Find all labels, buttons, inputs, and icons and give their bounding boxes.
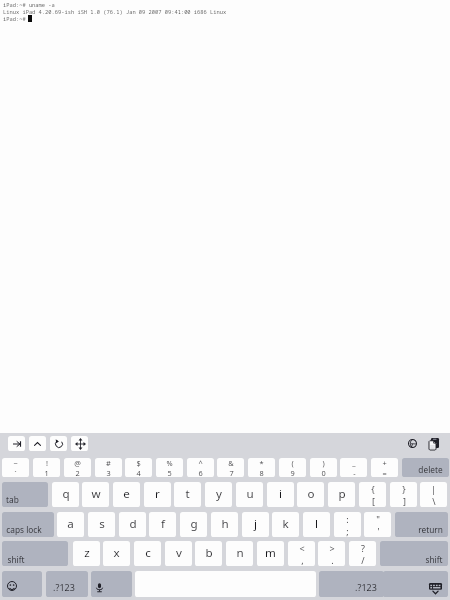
button[interactable]: w	[82, 482, 109, 507]
button[interactable]: +	[371, 458, 398, 477]
staticText: 1	[44, 468, 49, 477]
staticText: $	[136, 458, 141, 468]
staticText: return	[418, 524, 443, 535]
button[interactable]: $	[125, 458, 152, 477]
button[interactable]: u	[236, 482, 263, 507]
button[interactable]: <	[288, 541, 315, 566]
staticText: }	[402, 483, 406, 495]
button[interactable]: >	[318, 541, 345, 566]
button[interactable]: .?123	[319, 571, 384, 597]
button[interactable]: Arrow keys	[71, 436, 88, 451]
button[interactable]: p	[328, 482, 355, 507]
button[interactable]: e	[113, 482, 140, 507]
button[interactable]: i	[267, 482, 294, 507]
staticText: i	[279, 486, 282, 502]
button[interactable]: g	[180, 512, 207, 537]
button[interactable]: t	[174, 482, 201, 507]
button[interactable]: ~	[2, 458, 29, 477]
button[interactable]: (	[279, 458, 306, 477]
button[interactable]: f	[149, 512, 176, 537]
button[interactable]: )	[310, 458, 337, 477]
button[interactable]: }	[390, 482, 417, 507]
staticText: ]	[403, 495, 406, 507]
button[interactable]: a	[57, 512, 84, 537]
staticText: r	[155, 486, 160, 502]
button[interactable]: s	[88, 512, 115, 537]
staticText: f	[161, 516, 165, 532]
staticText: {	[371, 483, 375, 495]
button[interactable]: o	[297, 482, 324, 507]
button[interactable]: Control key	[29, 436, 46, 451]
button[interactable]: |	[420, 482, 447, 507]
button[interactable]: z	[73, 541, 100, 566]
staticText: shift	[7, 554, 25, 565]
button[interactable]: ?	[349, 541, 376, 566]
staticText: *	[259, 458, 264, 468]
staticText: delete	[418, 464, 443, 475]
button[interactable]: m	[257, 541, 284, 566]
staticText: 3	[106, 468, 111, 477]
button[interactable]: x	[103, 541, 130, 566]
button[interactable]: shift	[2, 541, 68, 566]
staticText: @	[74, 458, 81, 468]
staticText: n	[236, 545, 244, 561]
staticText: j	[254, 516, 257, 532]
staticText: tab	[6, 494, 19, 505]
button[interactable]: Change keyboard	[403, 436, 421, 451]
button[interactable]: Dictation	[91, 571, 132, 597]
button[interactable]: _	[340, 458, 367, 477]
staticText: d	[129, 516, 137, 532]
button[interactable]: delete	[402, 458, 449, 477]
button[interactable]: ^	[187, 458, 214, 477]
staticText: 6	[198, 468, 203, 477]
button[interactable]: *	[248, 458, 275, 477]
staticText: .?123	[355, 581, 377, 593]
staticText: m	[265, 545, 276, 561]
button[interactable]: b	[195, 541, 222, 566]
button[interactable]: !	[33, 458, 60, 477]
staticText: l	[315, 516, 318, 532]
staticText: 5	[167, 468, 172, 477]
staticText: .	[331, 554, 334, 566]
staticText: p	[338, 486, 346, 502]
button[interactable]: &	[217, 458, 244, 477]
staticText: e	[123, 486, 130, 502]
button[interactable]: c	[134, 541, 161, 566]
button[interactable]: Emoji	[2, 571, 42, 597]
staticText: iPad:~#	[3, 15, 29, 22]
button[interactable]: k	[272, 512, 299, 537]
button[interactable]: #	[95, 458, 122, 477]
button[interactable]: return	[395, 512, 448, 537]
button[interactable]: h	[211, 512, 238, 537]
button[interactable]: "	[364, 512, 391, 537]
staticText: s	[99, 516, 105, 532]
button[interactable]: Tab key	[8, 436, 25, 451]
staticText: g	[190, 516, 198, 532]
button[interactable]: caps lock	[2, 512, 54, 537]
button[interactable]: %	[156, 458, 183, 477]
staticText: 8	[259, 468, 264, 477]
button[interactable]: j	[242, 512, 269, 537]
staticText: !	[46, 458, 48, 468]
button[interactable]: v	[165, 541, 192, 566]
button[interactable]: l	[303, 512, 330, 537]
button[interactable]: r	[144, 482, 171, 507]
button[interactable]: {	[359, 482, 386, 507]
button[interactable]: shift	[380, 541, 448, 566]
button[interactable]: .?123	[46, 571, 88, 597]
button[interactable]: Command history	[50, 436, 67, 451]
button[interactable]: q	[52, 482, 79, 507]
staticText: .?123	[53, 581, 75, 593]
staticText: k	[282, 516, 289, 532]
button[interactable]: @	[64, 458, 91, 477]
button[interactable]: d	[119, 512, 146, 537]
staticText: \	[432, 495, 436, 507]
button[interactable]: n	[226, 541, 253, 566]
button[interactable]: y	[205, 482, 232, 507]
button[interactable]: tab	[2, 482, 48, 507]
button[interactable]: :	[334, 512, 361, 537]
staticText: h	[221, 516, 229, 532]
button[interactable]: Paste	[425, 436, 443, 451]
button[interactable]: Hide keyboard	[383, 571, 448, 597]
